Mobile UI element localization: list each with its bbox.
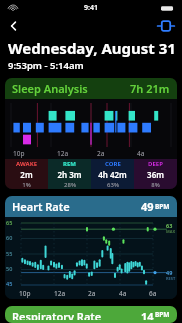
staticText: CORE	[105, 160, 121, 168]
staticText: 10p	[13, 149, 25, 158]
staticText: BPM	[155, 202, 170, 211]
staticText: 2a	[97, 149, 105, 158]
staticText: 49	[166, 269, 173, 276]
staticText: 9:53pm - 5:14am	[8, 59, 84, 72]
staticText: MAX	[166, 229, 176, 234]
staticText: REST	[166, 276, 176, 281]
staticText: Wednesday, August 31	[8, 38, 176, 58]
button[interactable]: Back	[4, 16, 24, 36]
staticText: 12a	[57, 149, 69, 158]
staticText: 1%	[22, 181, 31, 189]
staticText: Sleep Analysis	[12, 81, 88, 96]
button[interactable]: REM	[48, 159, 91, 189]
staticText: 2m	[20, 169, 33, 180]
staticText: 6a	[149, 289, 157, 298]
staticText: 55	[6, 250, 13, 257]
staticText: 12a	[54, 289, 66, 298]
staticText: BPM	[155, 310, 170, 319]
staticText: 36m	[147, 169, 164, 180]
staticText: REM	[63, 160, 76, 168]
staticText: 4h 42m	[98, 169, 127, 180]
staticText: 2h 3m	[57, 169, 82, 180]
button[interactable]: Heart Rate	[5, 196, 177, 299]
staticText: 10p	[19, 289, 31, 298]
staticText: 4a	[119, 289, 127, 298]
button[interactable]: Sleep Analysis	[5, 78, 177, 189]
staticText: Heart Rate	[12, 199, 70, 214]
button[interactable]: AWAKE	[5, 159, 48, 189]
staticText: 2a	[88, 289, 96, 298]
staticText: 65	[6, 219, 13, 226]
button[interactable]: Respiratory Rate	[5, 306, 177, 323]
staticText: 49	[141, 199, 154, 214]
staticText: 14	[141, 309, 154, 320]
staticText: 4a	[137, 149, 145, 158]
button[interactable]: DEEP	[134, 159, 177, 189]
staticText: 60	[6, 234, 13, 241]
button[interactable]: CORE	[91, 159, 134, 189]
staticText: 8%	[151, 181, 160, 189]
staticText: 50	[6, 265, 13, 272]
staticText: 9:41	[84, 3, 98, 13]
button[interactable]: Sleep schedule	[155, 16, 177, 36]
staticText: 7h 21m	[130, 81, 170, 96]
staticText: DEEP	[148, 160, 163, 168]
staticText: 63%	[107, 181, 119, 189]
staticText: 63	[166, 222, 173, 229]
staticText: AWAKE	[16, 160, 37, 168]
staticText: Respiratory Rate	[12, 309, 102, 320]
staticText: 45	[6, 280, 13, 287]
staticText: 28%	[64, 181, 76, 189]
